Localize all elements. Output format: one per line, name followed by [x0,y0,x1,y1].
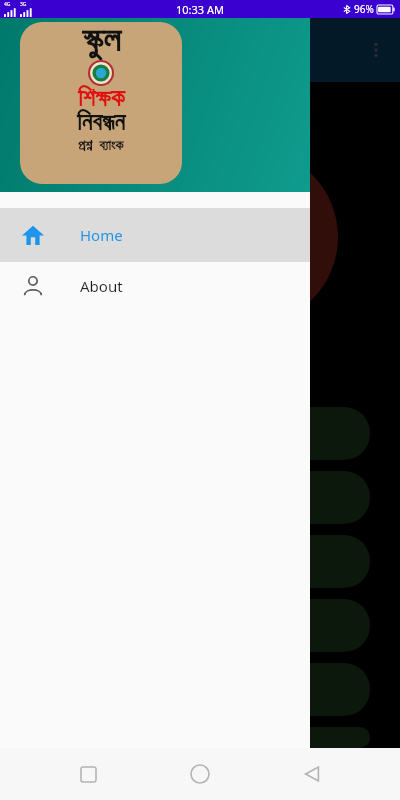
staticText: নিবন্ধন [77,111,125,135]
button[interactable]: পরীক্ষা [30,727,370,748]
button[interactable]: পরীক্ষা [30,599,370,652]
button[interactable]: পরীক্ষা [30,407,370,460]
staticText: About [80,276,123,296]
staticText: 3G [20,1,27,8]
button[interactable]: Recent apps [64,750,112,798]
button[interactable]: More options [352,26,400,74]
staticText: 10:33 AM [176,2,224,17]
button[interactable]: Back [288,750,336,798]
button[interactable]: পরীক্ষা [30,471,370,524]
button[interactable]: Home [176,750,224,798]
button[interactable]: About [0,262,310,310]
staticText: প্রশ্ন ব্যাংক [78,135,124,154]
staticText: শিক্ষক [78,87,125,111]
staticText: স্কুল [82,24,121,58]
staticText: Home [80,225,123,245]
button[interactable]: পরীক্ষা [30,663,370,716]
button[interactable]: Home [0,208,310,262]
button[interactable]: পরীক্ষা [30,535,370,588]
staticText: 96% [354,2,374,16]
staticText: 4G [4,1,11,8]
